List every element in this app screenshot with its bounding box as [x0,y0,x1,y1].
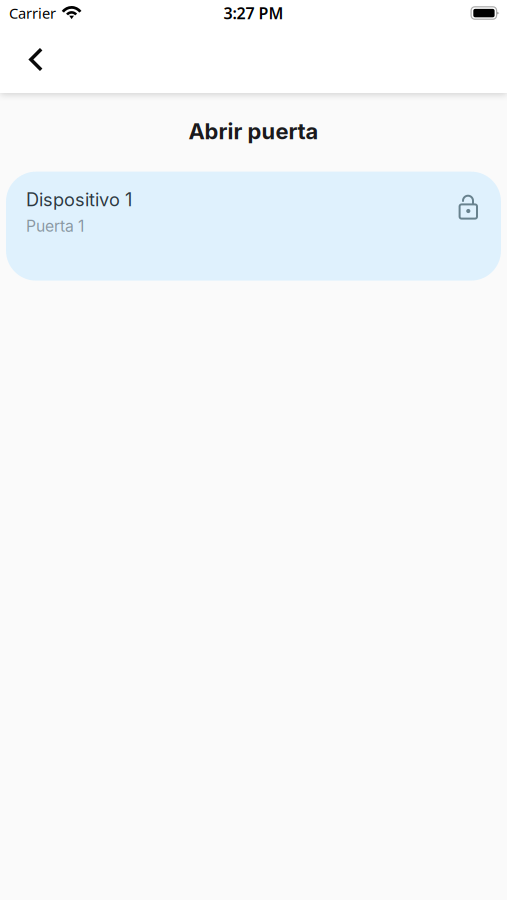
staticText: Carrier [9,3,56,23]
button[interactable]: Dispositivo 1 [6,172,501,281]
staticText: Abrir puerta [188,118,318,145]
staticText: Puerta 1 [26,217,84,236]
staticText: 3:27 PM [223,2,283,24]
staticText: Dispositivo 1 [26,189,132,210]
button[interactable]: Back [14,37,58,81]
